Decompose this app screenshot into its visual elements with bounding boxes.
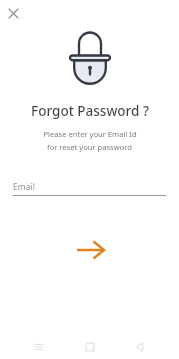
button[interactable]: Home — [78, 335, 102, 359]
staticText: Forgot Password ? — [31, 102, 149, 120]
button[interactable]: Submit — [69, 237, 111, 263]
button[interactable]: Close — [3, 3, 23, 23]
staticText: Please enter your Email Id — [43, 129, 137, 139]
staticText: for reset your password — [47, 142, 132, 152]
button[interactable]: Back — [128, 335, 152, 359]
button[interactable]: Email — [13, 178, 166, 196]
staticText: Email — [13, 181, 35, 193]
button[interactable]: Recents — [27, 335, 51, 359]
